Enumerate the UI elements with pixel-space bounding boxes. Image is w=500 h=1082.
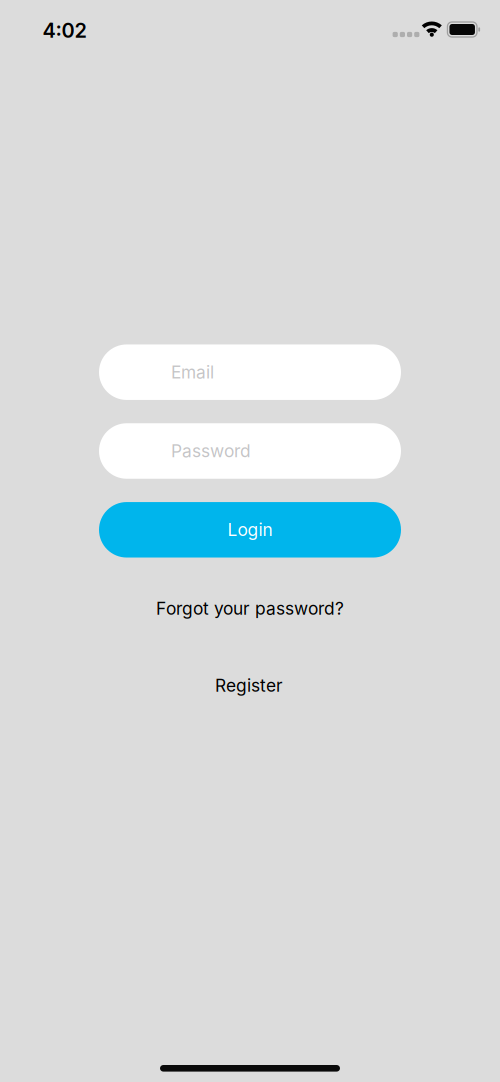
staticText: Register (215, 675, 283, 696)
staticText: 4:02 (42, 19, 86, 42)
button[interactable]: Register (215, 675, 283, 696)
button[interactable]: Password (99, 423, 401, 479)
staticText: Forgot your password? (156, 598, 344, 619)
staticText: Login (227, 520, 272, 540)
staticText: Password (171, 441, 251, 461)
button[interactable]: Forgot your password? (156, 598, 344, 619)
button[interactable]: Login (99, 502, 401, 557)
button[interactable]: Email (99, 344, 401, 400)
staticText: Email (171, 362, 214, 382)
